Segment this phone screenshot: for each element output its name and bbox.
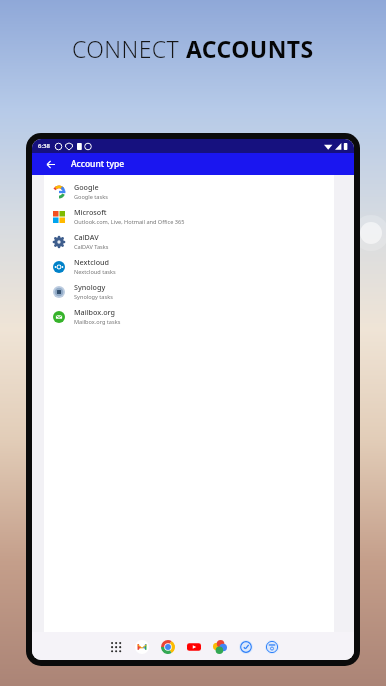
button[interactable]: Tasks: [237, 638, 254, 655]
staticText: Nextcloud: [74, 257, 110, 267]
button[interactable]: Gmail: [133, 638, 150, 655]
staticText: Mailbox.org: [74, 307, 115, 317]
staticText: Google: [74, 182, 99, 192]
button[interactable]: Nextcloud: [44, 254, 334, 279]
staticText: CalDAV Tasks: [74, 243, 109, 251]
staticText: Account type: [71, 158, 125, 170]
staticText: CONNECT: [72, 33, 186, 64]
button[interactable]: Mailbox.org: [44, 304, 334, 329]
button[interactable]: Microsoft: [44, 204, 334, 229]
button[interactable]: Photos: [211, 638, 228, 655]
staticText: Synology: [74, 282, 106, 292]
button[interactable]: Wallet: [263, 638, 280, 655]
button[interactable]: Chrome: [159, 638, 176, 655]
button[interactable]: Back: [42, 156, 58, 172]
staticText: 6:38: [38, 142, 50, 150]
staticText: Synology tasks: [74, 293, 113, 301]
staticText: Google tasks: [74, 193, 108, 201]
staticText: Microsoft: [74, 207, 107, 217]
staticText: ACCOUNTS: [186, 33, 314, 64]
button[interactable]: Google: [44, 179, 334, 204]
button[interactable]: CalDAV: [44, 229, 334, 254]
staticText: Nextcloud tasks: [74, 268, 116, 276]
staticText: CalDAV: [74, 232, 99, 242]
button[interactable]: All apps: [107, 638, 124, 655]
button[interactable]: Synology: [44, 279, 334, 304]
button[interactable]: YouTube: [185, 638, 202, 655]
staticText: Mailbox.org tasks: [74, 318, 121, 326]
staticText: Outlook.com, Live, Hotmail and Office 36…: [74, 218, 185, 226]
